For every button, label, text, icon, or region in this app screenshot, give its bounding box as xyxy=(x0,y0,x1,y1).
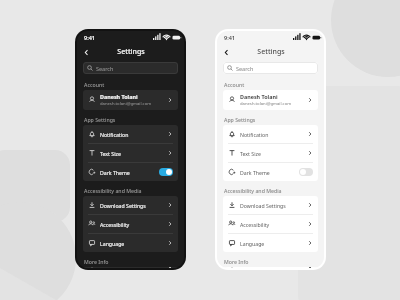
staticText: Language xyxy=(240,240,265,247)
button[interactable]: Help xyxy=(83,267,178,268)
staticText: Language xyxy=(100,240,125,247)
button[interactable]: Help xyxy=(223,267,318,268)
staticText: Search xyxy=(96,65,114,72)
button[interactable]: Notification xyxy=(223,125,318,143)
button[interactable]: Accessibility xyxy=(223,215,318,233)
staticText: Search xyxy=(236,65,254,72)
staticText: Settings xyxy=(257,47,285,57)
staticText: Account xyxy=(84,81,105,88)
staticText: Dark Theme xyxy=(100,169,130,176)
staticText: Settings xyxy=(117,47,145,57)
staticText: Notification xyxy=(240,131,269,138)
staticText: 9:41 xyxy=(224,34,235,41)
button[interactable]: Notification xyxy=(83,125,178,143)
staticText: More Info xyxy=(84,258,109,265)
staticText: Dark Theme xyxy=(240,169,270,176)
staticText: danesh.tolani@gmail.com xyxy=(240,101,292,107)
button[interactable]: Text Size xyxy=(223,144,318,162)
button[interactable]: Download Settings xyxy=(223,196,318,214)
button[interactable]: Search xyxy=(83,62,178,74)
button[interactable]: Danesh Tolani xyxy=(83,90,178,110)
button[interactable]: Download Settings xyxy=(83,196,178,214)
button[interactable]: Dark Theme xyxy=(83,163,178,181)
staticText: Accessibility xyxy=(240,221,270,228)
button[interactable]: Accessibility xyxy=(83,215,178,233)
button[interactable]: Back xyxy=(81,47,92,58)
button[interactable]: Dark theme toggle xyxy=(299,168,313,176)
staticText: App Settings xyxy=(224,116,256,123)
button[interactable]: Text Size xyxy=(83,144,178,162)
staticText: Account xyxy=(224,81,245,88)
staticText: danesh.tolani@gmail.com xyxy=(100,101,152,107)
staticText: Danesh Tolani xyxy=(240,93,278,100)
button[interactable]: Search xyxy=(223,62,318,74)
button[interactable]: Dark theme toggle xyxy=(159,168,173,176)
staticText: 9:41 xyxy=(84,34,95,41)
staticText: Accessibility xyxy=(100,221,130,228)
staticText: Accessibility and Media xyxy=(84,187,142,194)
staticText: Download Settings xyxy=(240,202,286,209)
staticText: Text Size xyxy=(100,150,121,157)
staticText: Accessibility and Media xyxy=(224,187,282,194)
staticText: Danesh Tolani xyxy=(100,93,138,100)
staticText: Text Size xyxy=(240,150,261,157)
staticText: App Settings xyxy=(84,116,116,123)
button[interactable]: Language xyxy=(223,234,318,252)
button[interactable]: Dark Theme xyxy=(223,163,318,181)
staticText: Download Settings xyxy=(100,202,146,209)
staticText: More Info xyxy=(224,258,249,265)
staticText: Notification xyxy=(100,131,129,138)
button[interactable]: Back xyxy=(221,47,232,58)
button[interactable]: Language xyxy=(83,234,178,252)
button[interactable]: Danesh Tolani xyxy=(223,90,318,110)
